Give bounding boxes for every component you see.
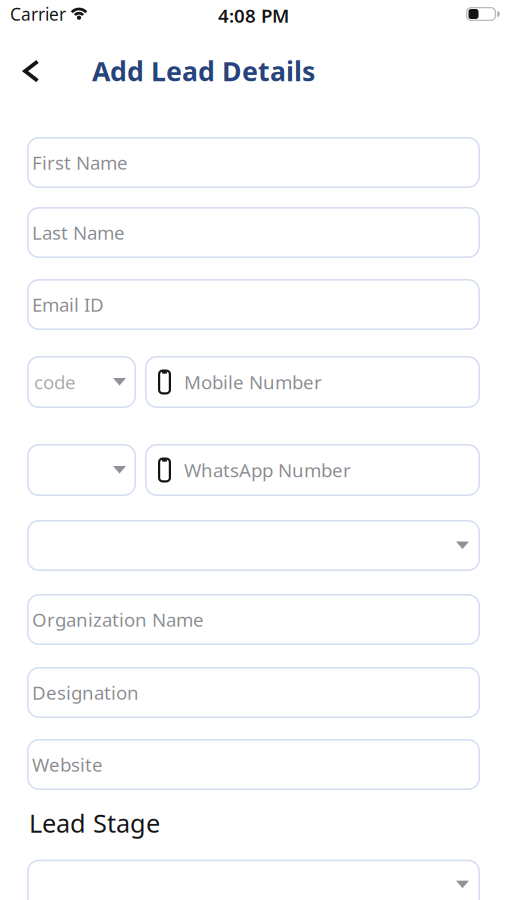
staticText: Email ID [32, 292, 104, 317]
staticText: Organization Name [32, 607, 204, 632]
button[interactable]: Organization Name [27, 594, 480, 645]
staticText: 4:08 PM [218, 3, 289, 28]
staticText: Lead Stage [29, 806, 160, 840]
button[interactable]: WhatsApp Number [145, 444, 480, 496]
button[interactable]: Mobile Number [145, 356, 480, 408]
button[interactable]: Lead Stage [27, 860, 480, 900]
button[interactable]: Country code [27, 356, 136, 408]
staticText: WhatsApp Number [184, 458, 351, 482]
button[interactable]: Back [16, 54, 46, 88]
button[interactable]: Country code [27, 444, 136, 496]
staticText: Mobile Number [184, 370, 322, 394]
button[interactable]: Lead Source [27, 520, 480, 571]
button[interactable]: Email ID [27, 279, 480, 330]
staticText: Add Lead Details [92, 53, 315, 89]
staticText: First Name [32, 150, 128, 175]
staticText: Website [32, 752, 103, 777]
staticText: code [34, 370, 76, 394]
button[interactable]: First Name [27, 137, 480, 188]
button[interactable]: Designation [27, 667, 480, 718]
button[interactable]: Website [27, 739, 480, 790]
button[interactable]: Last Name [27, 207, 480, 258]
staticText: Last Name [32, 220, 125, 245]
staticText: Carrier [10, 2, 66, 25]
staticText: Designation [32, 680, 139, 705]
